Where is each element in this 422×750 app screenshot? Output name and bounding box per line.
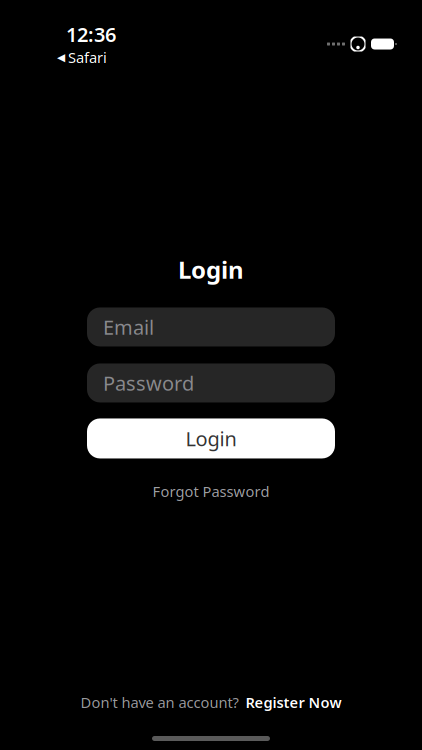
staticText: ◀ [57, 51, 65, 63]
button[interactable]: Email [87, 307, 335, 346]
staticText: 12:36 [66, 21, 116, 48]
staticText: Email [103, 314, 154, 340]
button[interactable]: ◀ [57, 47, 107, 67]
button[interactable]: Password [87, 363, 335, 402]
staticText: Forgot Password [152, 481, 269, 501]
staticText: Don't have an account? [80, 692, 238, 712]
button[interactable]: Forgot Password [142, 477, 279, 505]
button[interactable]: Register Now [245, 692, 341, 712]
staticText: Login [185, 425, 236, 452]
staticText: Login [178, 254, 244, 285]
button[interactable]: Login [87, 418, 335, 458]
staticText: Register Now [245, 692, 341, 712]
staticText: Password [103, 370, 194, 396]
staticText: Safari [68, 47, 107, 67]
